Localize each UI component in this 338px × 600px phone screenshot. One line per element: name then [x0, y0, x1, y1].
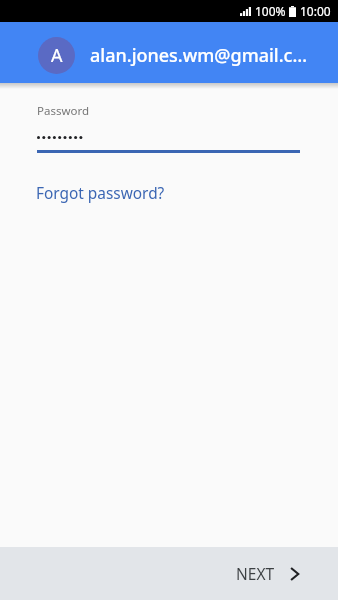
- staticText: 10:00: [300, 3, 331, 19]
- staticText: Password: [37, 103, 90, 119]
- button[interactable]: Forgot password?: [36, 183, 165, 204]
- staticText: A: [51, 43, 63, 68]
- button[interactable]: NEXT: [212, 549, 338, 598]
- button[interactable]: Account alan.jones.wm@gmail.com: [0, 22, 338, 83]
- staticText: 100%: [255, 3, 286, 19]
- staticText: Forgot password?: [36, 183, 165, 204]
- staticText: NEXT: [236, 563, 275, 584]
- staticText: alan.jones.wm@gmail.c…: [90, 43, 308, 68]
